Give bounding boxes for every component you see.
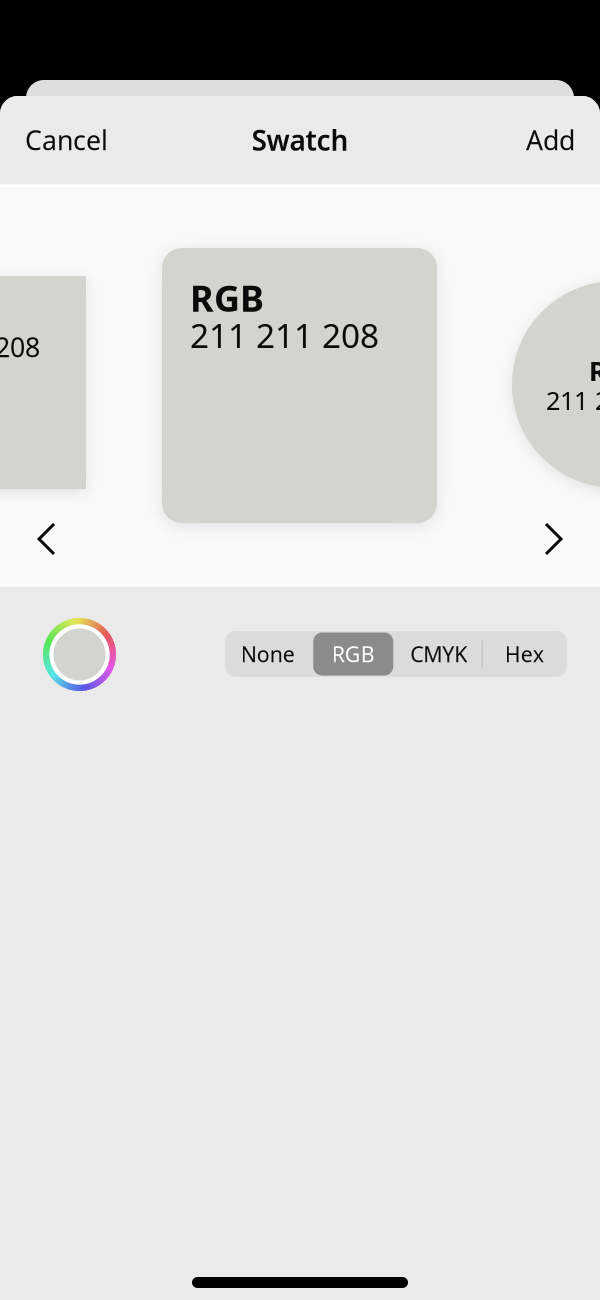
button[interactable]: Color picker [43, 618, 116, 691]
button[interactable]: Hex [481, 631, 567, 677]
staticText: RGB [332, 640, 375, 668]
staticText: RGB [190, 274, 264, 322]
staticText: Cancel [25, 122, 108, 158]
staticText: 211 211 208 [190, 313, 379, 357]
staticText: Hex [505, 640, 544, 668]
staticText: CMYK [410, 640, 467, 668]
button[interactable]: Next shape [532, 510, 575, 568]
staticText: Swatch [251, 121, 348, 159]
button[interactable]: Cancel [23, 110, 110, 170]
button[interactable]: Previous shape [25, 510, 68, 568]
button[interactable]: CMYK [396, 631, 481, 677]
staticText: Add [526, 122, 575, 158]
button[interactable]: Add [524, 110, 577, 170]
staticText: None [241, 640, 295, 668]
staticText: RGB [589, 353, 600, 388]
button[interactable]: None [225, 631, 310, 677]
staticText: 211 211 208 [0, 329, 40, 365]
button[interactable]: RGB [310, 631, 396, 677]
staticText: 211 211 208 [546, 383, 600, 417]
